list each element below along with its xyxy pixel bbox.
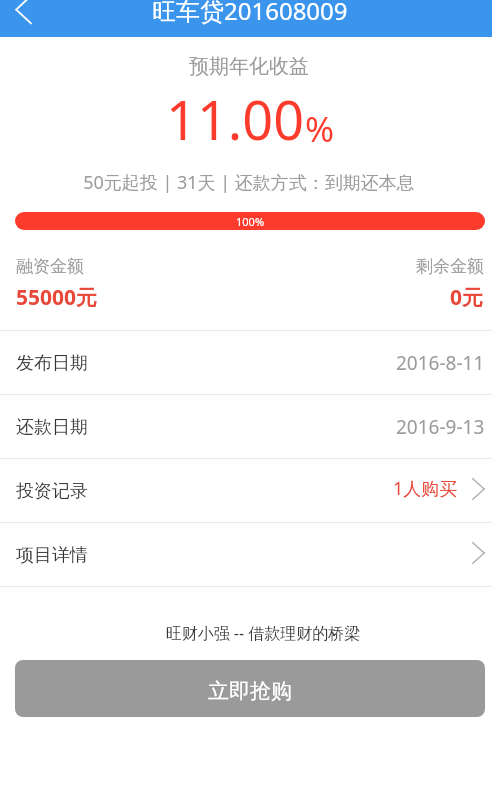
- staticText: 剩余金额: [416, 256, 484, 277]
- staticText: 融资金额: [16, 256, 84, 277]
- staticText: 发布日期: [16, 352, 88, 375]
- button[interactable]: 投资记录: [0, 459, 492, 523]
- staticText: 旺车贷201608009: [152, 0, 348, 27]
- staticText: 100%: [236, 214, 265, 229]
- staticText: 50元起投 | 31天 | 还款方式：到期还本息: [3, 170, 492, 195]
- button[interactable]: 发布日期: [0, 331, 492, 395]
- button[interactable]: 项目详情: [0, 523, 492, 587]
- staticText: 旺财小强 -- 借款理财的桥梁: [17, 622, 492, 644]
- staticText: 55000元: [16, 283, 98, 312]
- staticText: 预期年化收益: [3, 54, 492, 79]
- staticText: 投资记录: [16, 480, 88, 503]
- staticText: 1人购买: [393, 476, 458, 501]
- staticText: 2016-8-11: [396, 350, 485, 376]
- staticText: 2016-9-13: [396, 414, 485, 440]
- staticText: 项目详情: [16, 544, 88, 567]
- staticText: %: [305, 105, 335, 153]
- button[interactable]: 还款日期: [0, 395, 492, 459]
- button[interactable]: 立即抢购: [15, 660, 485, 717]
- staticText: 11.00: [166, 82, 305, 156]
- staticText: 立即抢购: [208, 678, 292, 704]
- button[interactable]: Back: [0, 0, 46, 37]
- staticText: 0元: [450, 283, 484, 312]
- staticText: 还款日期: [16, 416, 88, 439]
